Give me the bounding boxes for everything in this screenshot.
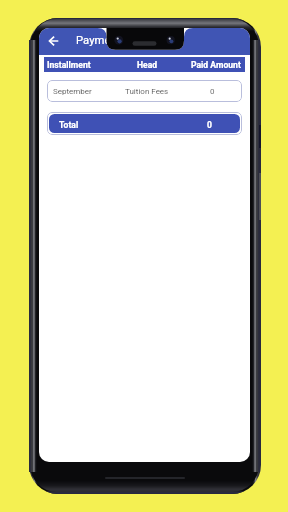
staticText: 0 xyxy=(207,120,212,130)
staticText: Paid Amount xyxy=(191,60,241,70)
staticText: 0 xyxy=(210,87,215,96)
staticText: Head xyxy=(137,60,158,70)
button[interactable]: September xyxy=(47,80,242,102)
staticText: Installment xyxy=(47,60,91,70)
button[interactable]: Installment xyxy=(44,57,245,72)
button[interactable]: Back xyxy=(43,30,65,52)
staticText: Total xyxy=(59,120,79,130)
staticText: September xyxy=(53,87,92,96)
button[interactable]: Total xyxy=(47,112,242,135)
staticText: Payments xyxy=(76,34,127,47)
staticText: Tuition Fees xyxy=(125,87,169,96)
